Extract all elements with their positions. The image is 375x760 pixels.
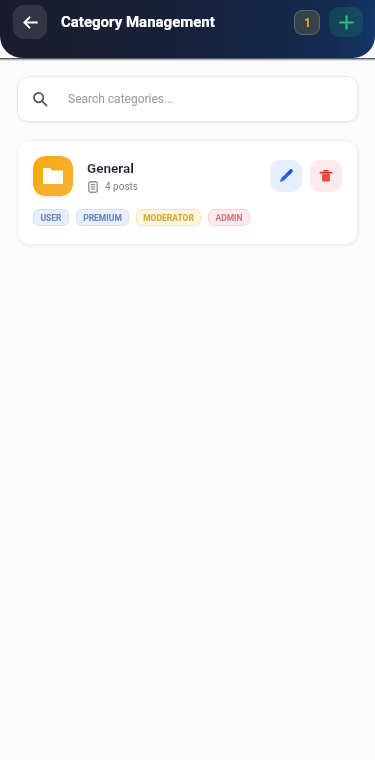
button[interactable]: Delete category — [310, 160, 342, 192]
button[interactable]: Back — [13, 5, 47, 39]
button[interactable]: Add category — [329, 7, 363, 37]
button[interactable]: ADMIN — [208, 209, 250, 226]
staticText: General — [87, 160, 134, 176]
staticText: USER — [40, 213, 62, 223]
staticText: MODERATOR — [143, 213, 194, 223]
staticText: Category Management — [61, 13, 215, 31]
button[interactable]: USER — [33, 209, 69, 226]
button[interactable]: Search categories... — [17, 76, 358, 122]
staticText: ADMIN — [215, 213, 243, 223]
button[interactable]: PREMIUM — [76, 209, 129, 226]
button[interactable]: MODERATOR — [136, 209, 201, 226]
button[interactable]: Pending count — [294, 10, 320, 35]
button[interactable]: Edit category — [270, 160, 302, 192]
staticText: Search categories... — [68, 92, 174, 106]
staticText: 4 posts — [105, 181, 139, 193]
button[interactable]: General — [17, 140, 358, 245]
staticText: PREMIUM — [83, 213, 122, 223]
staticText: 1 — [304, 16, 311, 30]
